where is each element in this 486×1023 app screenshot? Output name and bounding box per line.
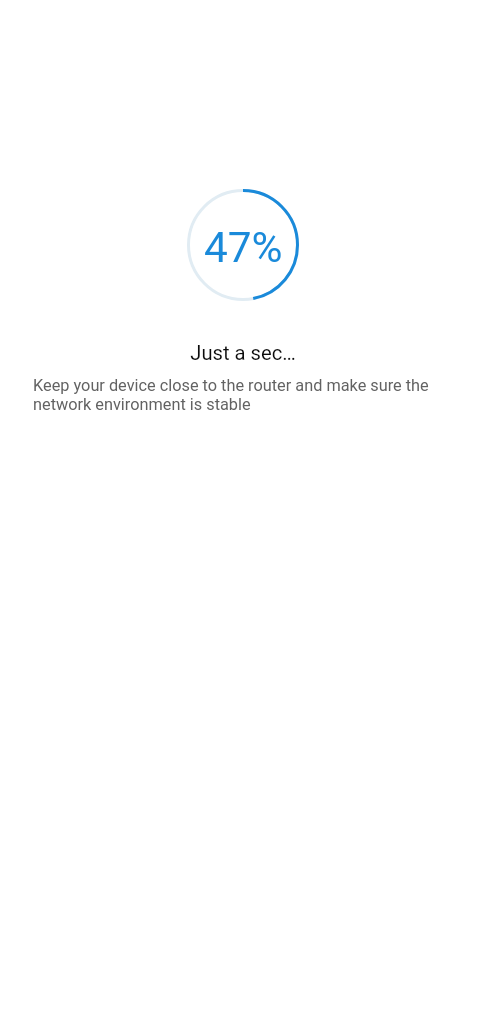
staticText: Just a sec… [190,341,296,365]
staticText: 47% [204,223,283,273]
other: Connection progress 47 percent [187,189,299,301]
staticText: Keep your device close to the router and… [33,376,462,414]
